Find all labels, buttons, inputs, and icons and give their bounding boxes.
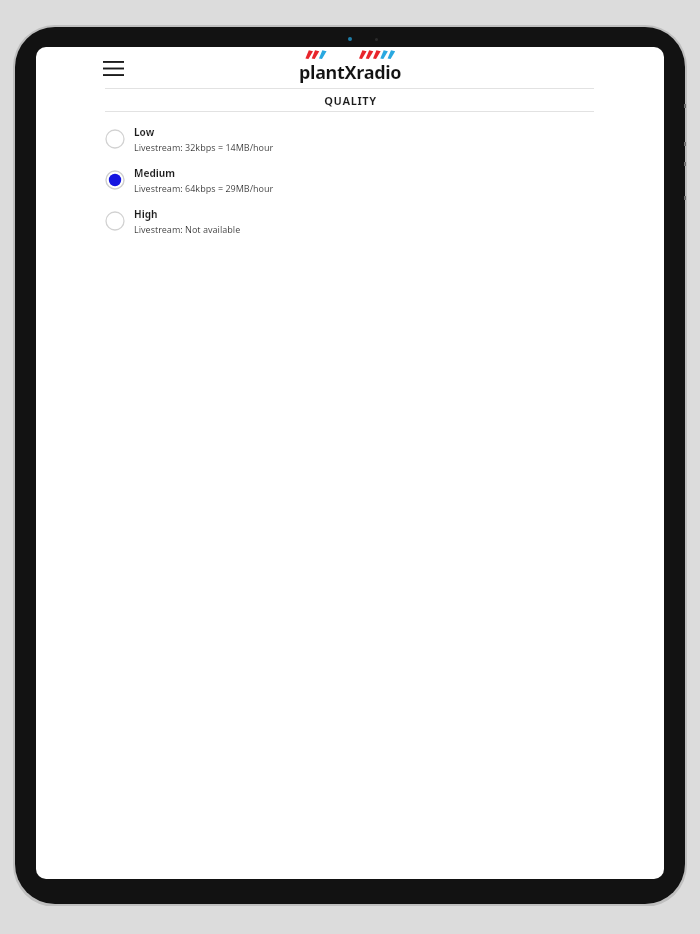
button[interactable]: High <box>36 200 664 241</box>
button[interactable]: Medium <box>36 159 664 200</box>
staticText: Medium <box>134 166 175 180</box>
staticText: Low <box>134 125 155 139</box>
staticText: QUALITY <box>324 93 377 108</box>
button[interactable]: Menu <box>98 53 128 83</box>
staticText: High <box>134 207 158 221</box>
staticText: plants play in their place <box>312 86 388 89</box>
staticText: Livestream: 32kbps = 14MB/hour <box>134 141 274 153</box>
staticText: Livestream: 64kbps = 29MB/hour <box>134 182 274 194</box>
staticText: plantXradio <box>299 60 402 85</box>
button[interactable]: Low <box>36 118 664 159</box>
staticText: Livestream: Not available <box>134 223 241 235</box>
